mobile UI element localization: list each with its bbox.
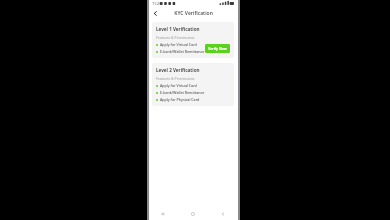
button[interactable]: Back [208,207,238,220]
button[interactable]: Recents [148,207,178,220]
staticText: Apply for Virtual Card [160,83,197,88]
staticText: E-bank/Wallet Remittance [160,49,205,54]
staticText: Apply for Virtual Card [160,42,197,47]
button[interactable]: Level 1 Verification [152,22,234,58]
staticText: KYC Verification [174,10,213,17]
staticText: Level 1 Verification [156,26,200,32]
button[interactable]: Verify Now [205,44,230,53]
staticText: Features & Permissions [156,35,195,40]
staticText: Features & Permissions [156,76,195,81]
button[interactable]: Home [178,207,208,220]
staticText: Verify Now [208,46,227,51]
button[interactable]: Back [151,9,160,18]
button[interactable]: Level 2 Verification [152,63,234,106]
staticText: 11:20 [152,1,162,6]
staticText: Level 2 Verification [156,67,200,73]
staticText: Apply for Physical Card [160,97,200,102]
staticText: E-bank/Wallet Remittance [160,90,205,95]
